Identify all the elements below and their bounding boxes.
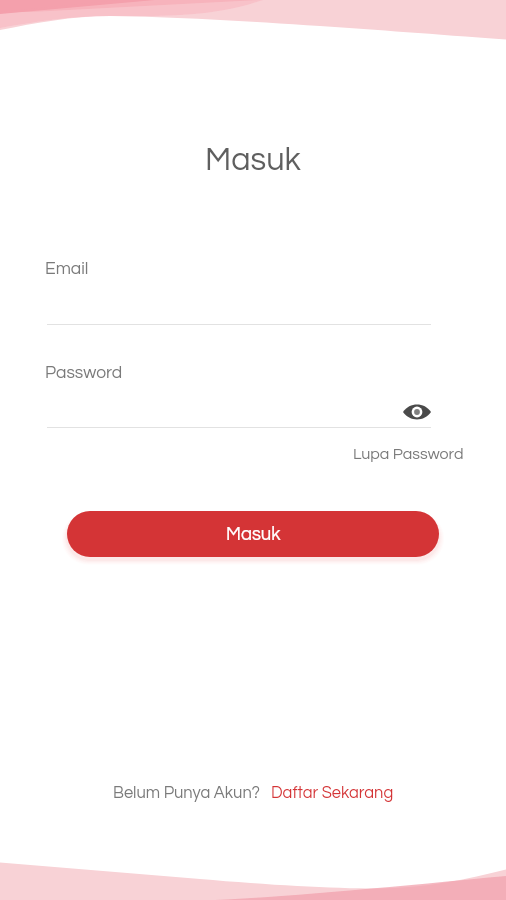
button[interactable]: Masuk [67, 511, 439, 557]
staticText: Belum Punya Akun? [113, 784, 260, 801]
staticText: Email [45, 260, 89, 278]
staticText: Masuk [226, 525, 281, 544]
button[interactable]: Lupa Password [353, 446, 506, 462]
button[interactable]: Show password [403, 398, 431, 426]
button[interactable]: Daftar Sekarang [271, 784, 394, 801]
staticText: Password [45, 364, 123, 382]
staticText: Masuk [205, 143, 301, 176]
